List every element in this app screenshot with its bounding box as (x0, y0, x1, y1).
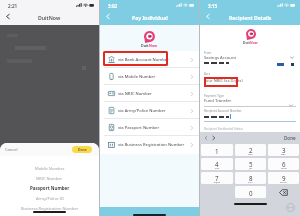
staticText: via Mobile Number (118, 74, 190, 80)
staticText: Fund Transfer (204, 98, 232, 104)
button[interactable]: Business Registration Number (0, 203, 99, 213)
staticText: Pay Individual (132, 14, 168, 21)
staticText: Duit (243, 40, 250, 44)
staticText: Business Registration Number (21, 206, 79, 211)
staticText: Recipient Residential Status (204, 127, 243, 131)
staticText: 0 (249, 189, 253, 197)
button[interactable]: Back (104, 12, 113, 21)
staticText: JKL (249, 167, 253, 170)
button[interactable]: Done (72, 146, 92, 153)
staticText: TUV (248, 181, 253, 184)
staticText: Recipient Account Number (204, 109, 242, 113)
staticText: 3:15 (208, 3, 218, 9)
staticText: GHI (215, 167, 220, 170)
staticText: PQRS (214, 181, 221, 184)
staticText: via Business Registration Number (118, 142, 190, 148)
button[interactable]: 2 (235, 144, 266, 156)
staticText: 5 (249, 160, 253, 168)
staticText: Now (250, 40, 258, 44)
staticText: Payment Type (204, 94, 224, 98)
button[interactable]: Back (4, 12, 13, 21)
button[interactable]: via NRIC Number (100, 85, 199, 102)
button[interactable]: 1 (201, 144, 233, 156)
staticText: Done (78, 147, 87, 152)
staticText: Duit (141, 43, 149, 48)
staticText: 4 (215, 160, 219, 168)
staticText: Passport Number (30, 185, 70, 191)
staticText: From (204, 51, 212, 55)
button[interactable]: Army/Police ID (0, 193, 99, 203)
button[interactable]: 5 (235, 158, 266, 170)
button[interactable]: Back (204, 12, 213, 21)
button[interactable]: Previous field (203, 135, 209, 141)
staticText: Army/Police ID (36, 196, 64, 201)
staticText: ABC (248, 153, 253, 156)
staticText: DuitNow (38, 14, 61, 21)
staticText: via Passport Number (118, 125, 190, 131)
staticText: DEF (281, 153, 286, 156)
staticText: Your NRIC (xx Digits) (204, 78, 243, 83)
button[interactable]: 4 (201, 158, 233, 170)
staticText: 6 (282, 160, 286, 168)
staticText: Mobile Number (35, 166, 65, 171)
button[interactable]: Cancel (5, 147, 18, 152)
button[interactable]: via Mobile Number (100, 68, 199, 85)
button[interactable]: 6 (268, 158, 299, 170)
staticText: Recipient Details (229, 14, 272, 21)
staticText: Now (149, 43, 158, 48)
staticText: via Army/Police Number (118, 108, 190, 114)
button[interactable]: via Passport Number (100, 119, 199, 136)
button[interactable]: via Army/Police Number (100, 102, 199, 119)
staticText: via NRIC Number (118, 91, 190, 97)
staticText: 3:02 (108, 3, 118, 9)
button[interactable]: Delete (267, 185, 300, 199)
staticText: NRIC Number (36, 176, 63, 181)
staticText: 1 (215, 147, 219, 155)
button[interactable]: via Business Registration Number (100, 136, 199, 153)
staticText: 2 (249, 146, 253, 154)
button[interactable]: 8 (235, 172, 266, 184)
button[interactable]: 0 (235, 186, 266, 198)
staticText: MNO (281, 167, 287, 170)
button[interactable]: Mobile Number (0, 163, 99, 173)
staticText: Acct (204, 72, 210, 76)
button[interactable]: 3 (268, 144, 299, 156)
button[interactable]: Passport Number (0, 183, 99, 193)
staticText: 2:21 (8, 3, 18, 9)
button[interactable]: 9 (268, 172, 299, 184)
button[interactable]: Next field (211, 135, 217, 141)
staticText: 3 (282, 146, 286, 154)
staticText: 7 (215, 174, 219, 182)
staticText: 8 (249, 174, 253, 182)
staticText: 9 (282, 174, 286, 182)
button[interactable]: Emoji keyboard (286, 203, 295, 212)
button[interactable]: Done (284, 135, 296, 141)
button[interactable]: 7 (201, 172, 233, 184)
staticText: WXYZ (280, 181, 287, 184)
staticText: via Bank Account Number (118, 57, 190, 63)
button[interactable]: via Bank Account Number (100, 51, 199, 68)
staticText: Savings Account (204, 55, 237, 61)
button[interactable]: NRIC Number (0, 173, 99, 183)
